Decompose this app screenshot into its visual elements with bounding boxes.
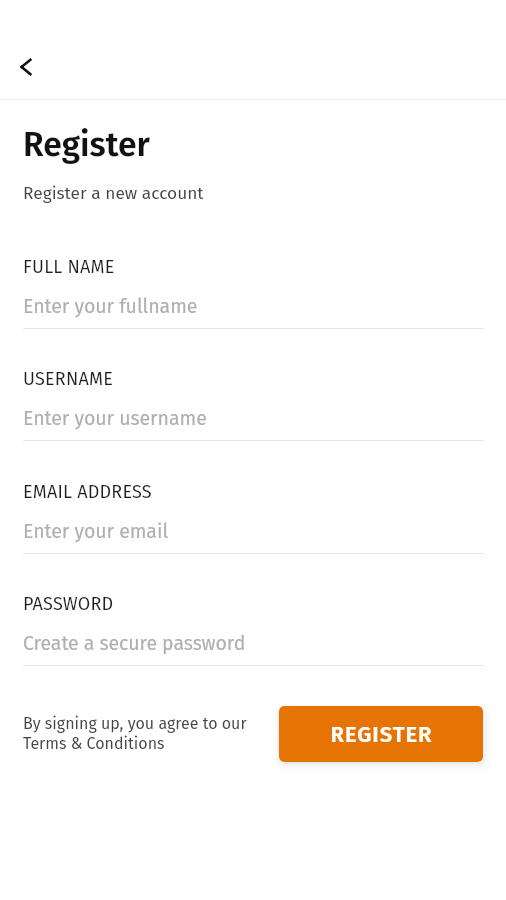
button[interactable]: Back — [2, 43, 50, 91]
staticText: Enter your fullname — [23, 295, 198, 318]
staticText: PASSWORD — [23, 593, 114, 615]
staticText: EMAIL ADDRESS — [23, 481, 152, 503]
staticText: By signing up, you agree to our Terms & … — [23, 714, 247, 753]
staticText: Create a secure password — [23, 632, 246, 655]
staticText: FULL NAME — [23, 256, 115, 278]
staticText: USERNAME — [23, 368, 113, 390]
staticText: Enter your email — [23, 520, 169, 543]
staticText: Register a new account — [23, 183, 204, 204]
button[interactable]: REGISTER — [279, 706, 483, 762]
staticText: Register — [23, 124, 150, 164]
staticText: Enter your username — [23, 407, 207, 430]
staticText: REGISTER — [330, 721, 433, 747]
